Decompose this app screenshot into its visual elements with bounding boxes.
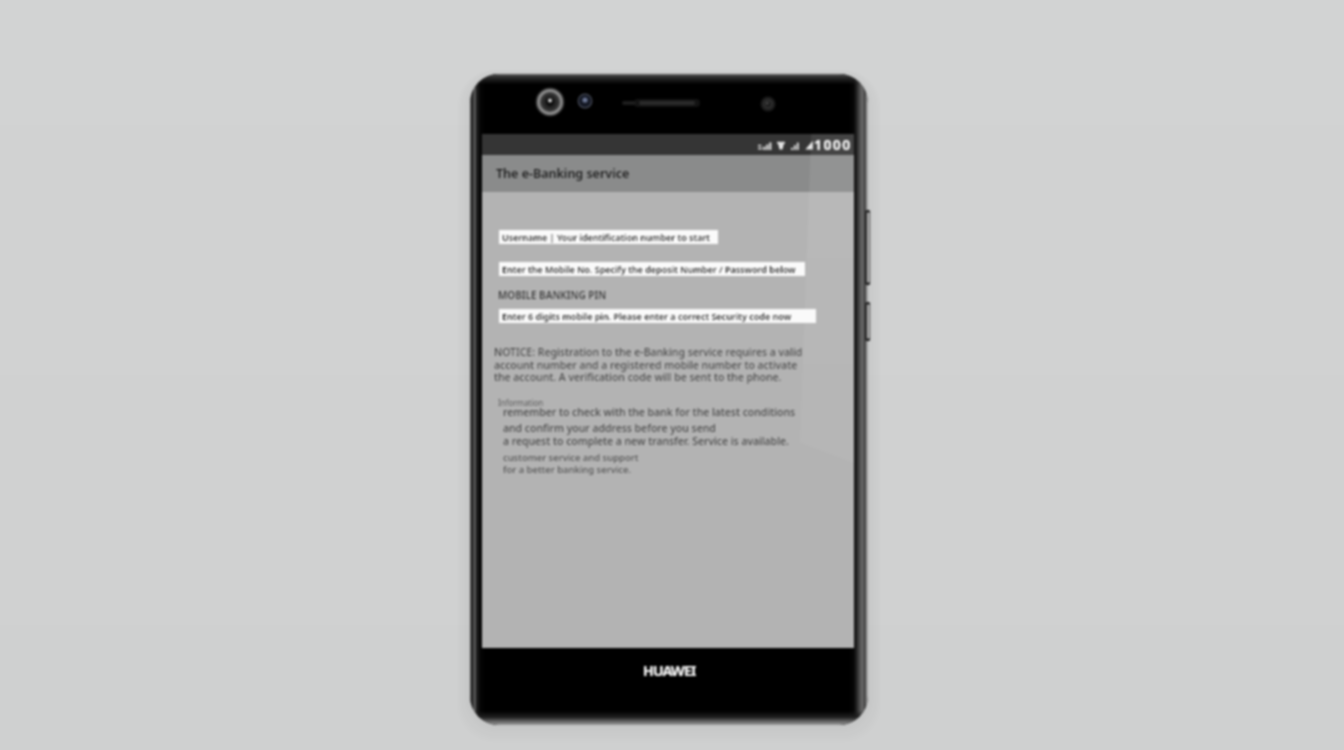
staticText: HUAWEI xyxy=(470,660,868,680)
button[interactable]: Enter 6 digits mobile pin. Please enter … xyxy=(499,309,816,323)
staticText: 1000 xyxy=(814,135,852,154)
staticText: The e-Banking service xyxy=(496,165,630,182)
staticText: customer service and support for a bette… xyxy=(503,451,639,475)
button[interactable]: Power button xyxy=(863,302,870,341)
button[interactable]: Enter the Mobile No. Specify the deposit… xyxy=(499,262,805,276)
staticText: and confirm your address before you send… xyxy=(503,421,835,448)
button[interactable]: The e-Banking service xyxy=(482,155,854,192)
staticText: Username | Your identification number to… xyxy=(502,231,711,243)
button[interactable]: Username | Your identification number to… xyxy=(499,230,718,244)
staticText: Information xyxy=(498,397,544,408)
staticText: Enter the Mobile No. Specify the deposit… xyxy=(502,263,796,275)
staticText: remember to check with the bank for the … xyxy=(503,405,835,419)
staticText: NOTICE: Registration to the e-Banking se… xyxy=(494,345,840,384)
button[interactable]: Volume buttons xyxy=(863,210,870,285)
staticText: Enter 6 digits mobile pin. Please enter … xyxy=(502,310,792,322)
staticText: MOBILE BANKING PIN xyxy=(498,288,607,302)
